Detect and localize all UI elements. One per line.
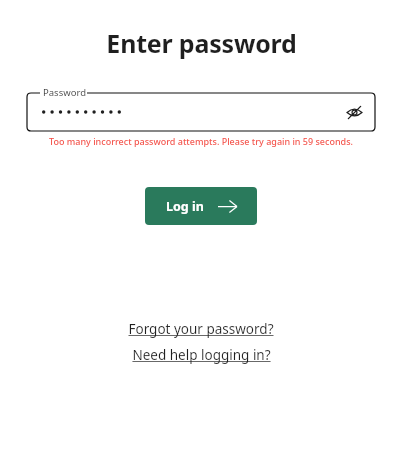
staticText: Log in (166, 198, 204, 215)
button[interactable]: Log in (145, 187, 257, 225)
staticText: Forgot your password? (128, 320, 274, 338)
button[interactable]: Password (27, 86, 375, 131)
staticText: Too many incorrect password attempts. Pl… (49, 135, 353, 147)
staticText: Need help logging in? (132, 346, 271, 364)
button[interactable]: Forgot your password? (126, 319, 276, 339)
button[interactable]: Need help logging in? (130, 345, 273, 365)
staticText: Enter password (106, 26, 297, 60)
staticText: Password (43, 86, 86, 99)
button[interactable]: Show password (337, 95, 371, 129)
